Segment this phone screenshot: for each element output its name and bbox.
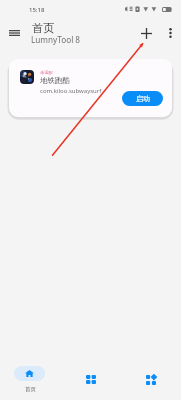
staticText: com.kiloo.subwaysurf xyxy=(40,87,102,95)
button[interactable]: 未适配 xyxy=(9,59,172,117)
button[interactable]: More options xyxy=(160,23,180,43)
button[interactable]: Menu xyxy=(4,23,24,43)
button[interactable]: 启动 xyxy=(122,91,163,106)
button[interactable]: Add xyxy=(136,23,156,43)
staticText: 启动 xyxy=(136,94,150,103)
staticText: 首页 xyxy=(25,386,36,393)
button[interactable]: Categories xyxy=(121,362,181,398)
staticText: 首页 xyxy=(32,21,55,35)
staticText: 15:18 xyxy=(29,6,45,14)
button[interactable]: 首页 xyxy=(0,362,60,398)
staticText: LumnyTool 8 xyxy=(31,34,81,45)
staticText: 未适配 xyxy=(40,70,53,75)
button[interactable]: Apps xyxy=(61,362,121,398)
staticText: 地铁跑酷 xyxy=(40,76,70,85)
